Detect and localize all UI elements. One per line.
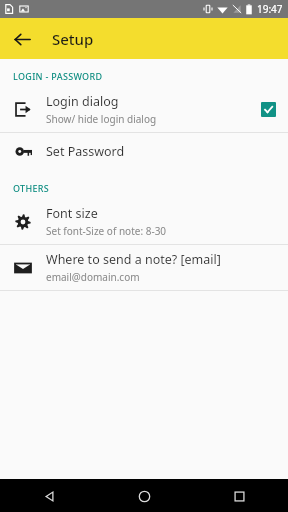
staticText: Font size [46,205,98,222]
button[interactable]: Back [34,481,64,511]
staticText: Login dialog [46,93,119,110]
button[interactable]: Set Password [0,133,288,169]
staticText: Setup [52,29,94,49]
button[interactable]: Font size [0,199,288,244]
staticText: Set font-Size of note: 8-30 [46,224,167,238]
button[interactable]: Login dialog [0,87,288,132]
staticText: email@domain.com [46,270,140,284]
staticText: OTHERS [13,182,50,194]
button[interactable]: Recents [224,481,254,511]
button[interactable]: Back [5,22,39,56]
staticText: Where to send a note? [email] [46,251,221,268]
button[interactable]: Home [129,481,159,511]
staticText: LOGIN - PASSWORD [13,70,103,82]
staticText: Show/ hide login dialog [46,112,157,126]
staticText: 19:47 [257,2,283,16]
staticText: Set Password [46,143,125,160]
button[interactable]: Where to send a note? [email] [0,245,288,290]
button[interactable]: Login dialog toggle [261,102,276,117]
